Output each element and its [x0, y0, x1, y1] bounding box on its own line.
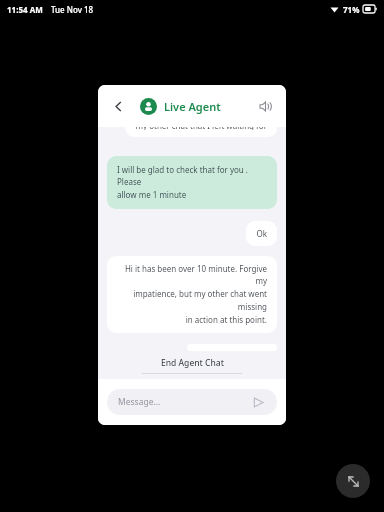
button[interactable]: Live Agent [140, 98, 221, 115]
button[interactable]: Hi it has been over 10 minute. Forgive m… [107, 256, 277, 333]
staticText: I will be glad to check that for you . P… [117, 164, 267, 201]
staticText: Live Agent [164, 99, 221, 114]
button[interactable]: Send [250, 394, 266, 410]
button[interactable]: my other chat that I left waiting for se… [125, 127, 277, 137]
button[interactable]: Resize window [336, 464, 370, 498]
staticText: End Agent Chat [161, 357, 224, 369]
staticText: 71% [343, 4, 360, 15]
button[interactable]: Back [108, 96, 128, 116]
staticText: 11:54 AM [7, 4, 43, 15]
button[interactable]: Mute audio [254, 95, 276, 117]
staticText: Tue Nov 18 [51, 4, 94, 15]
staticText: Hi it has been over 10 minute. Forgive m… [117, 263, 267, 326]
button[interactable]: Message... [107, 389, 277, 415]
button[interactable]: I will be glad to check that for you . P… [107, 156, 277, 209]
button[interactable]: Ok [246, 221, 277, 246]
staticText: Message... [118, 396, 161, 408]
button[interactable]: End Agent Chat [120, 354, 264, 377]
staticText: Ok [256, 228, 267, 239]
staticText: my other chat that I left waiting for se… [135, 127, 267, 130]
